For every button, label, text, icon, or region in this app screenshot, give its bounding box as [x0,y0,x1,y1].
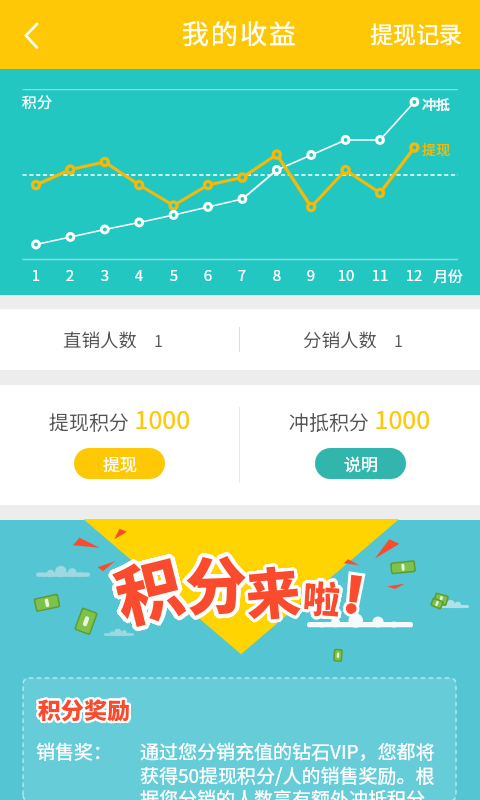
staticText: 来 [241,546,304,630]
staticText: 分 [179,537,246,629]
staticText: 来 [245,548,307,633]
staticText: 积分奖励 [38,693,130,726]
staticText: 积 [103,531,190,640]
staticText: 来 [243,551,306,635]
staticText: 积 [104,532,191,641]
staticText: 来 [243,548,305,632]
staticText: 来 [240,548,302,632]
staticText: 分 [179,536,246,628]
staticText: 提现积分 [49,407,129,436]
staticText: 啦 [301,568,342,624]
staticText: 啦 [299,569,340,625]
staticText: 分 [181,533,247,625]
staticText: 分 [185,539,251,631]
staticText: 11 [368,264,392,286]
staticText: 来 [239,546,302,630]
staticText: 积 [105,533,193,642]
staticText: 啦 [299,571,340,627]
staticText: 来 [244,546,306,631]
staticText: 分 [185,534,251,626]
staticText: 分 [183,532,249,624]
button[interactable]: Back [0,0,62,69]
staticText: 分 [186,535,252,627]
staticText: 积分奖励 [36,691,128,724]
staticText: 7 [230,264,254,286]
staticText: 积 [101,535,188,644]
staticText: 来 [240,545,303,629]
staticText: 积分奖励 [38,692,130,725]
staticText: 啦 [302,572,343,628]
staticText: 积分奖励 [40,692,132,725]
staticText: 积 [106,535,193,644]
staticText: 来 [242,551,305,635]
staticText: 啦 [304,570,345,626]
staticText: 分 [180,536,247,628]
button[interactable]: 提现 [74,448,165,479]
staticText: 啦 [301,571,342,627]
staticText: 积 [105,532,192,641]
staticText: 积 [105,531,192,640]
staticText: 1000 [129,400,191,436]
button[interactable]: 分销人数 [240,309,480,370]
staticText: 来 [240,549,303,633]
staticText: 积 [104,537,192,646]
staticText: 分 [184,535,250,627]
staticText: 积 [105,534,192,643]
button[interactable]: 直销人数 [0,309,239,370]
staticText: 说明 [344,451,378,476]
staticText: 冲抵积分 [289,407,369,436]
staticText: 销售奖： [36,737,113,765]
staticText: 啦 [302,569,343,625]
staticText: 积分奖励 [39,692,131,725]
staticText: 积 [107,532,194,641]
staticText: 积分奖励 [38,691,130,724]
staticText: 提现记录 [370,16,462,49]
staticText: 分 [186,537,253,629]
staticText: 积 [103,537,191,646]
staticText: 积分奖励 [37,694,129,727]
staticText: 来 [241,545,304,629]
staticText: 分 [186,539,252,631]
staticText: 分 [184,538,251,630]
staticText: 来 [245,546,307,631]
staticText: 来 [240,546,303,630]
button[interactable]: 说明 [315,448,406,479]
staticText: 我的收益 [182,13,298,52]
staticText: 分 [184,536,251,628]
staticText: 分 [182,535,248,627]
staticText: 分 [183,537,250,629]
staticText: 来 [243,549,305,633]
staticText: 啦 [299,567,340,623]
staticText: 分 [181,537,248,629]
staticText: 积分奖励 [39,694,131,727]
staticText: 积 [108,534,195,643]
staticText: 分 [184,537,251,629]
staticText: 啦 [300,567,341,623]
staticText: 分 [180,535,246,627]
staticText: 啦 [303,567,344,623]
staticText: 积 [102,536,189,645]
staticText: 积 [108,531,195,640]
staticText: 积分 [22,91,53,113]
staticText: 分 [182,532,248,624]
button[interactable]: 提现记录 [362,0,480,69]
staticText: 分 [185,535,251,627]
staticText: 2 [58,264,82,286]
staticText: 积 [108,532,196,641]
staticText: 积 [106,532,193,641]
staticText: 积 [107,533,195,642]
staticText: 来 [240,547,302,631]
staticText: 分 [181,538,248,630]
staticText: 分 [182,534,248,626]
staticText: 啦 [302,567,343,623]
staticText: 啦 [300,568,341,624]
staticText: 来 [244,547,306,632]
staticText: 积 [107,534,194,643]
staticText: 分 [183,533,249,625]
staticText: 来 [244,549,307,634]
staticText: 分 [185,538,252,630]
staticText: 啦 [300,570,341,626]
staticText: 积 [103,533,191,643]
staticText: 月份 [433,265,464,287]
staticText: 分 [183,535,249,627]
